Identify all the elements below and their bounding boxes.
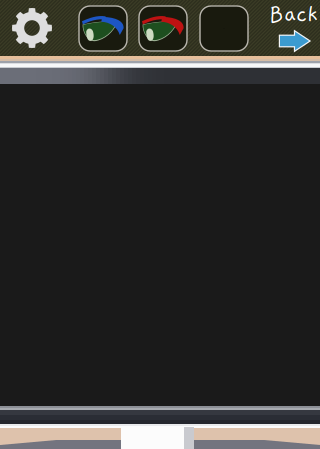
button[interactable]: Red-green 3D glasses bbox=[139, 6, 187, 51]
button[interactable]: Settings bbox=[6, 0, 58, 56]
button[interactable]: Blue-green 3D glasses bbox=[79, 6, 127, 51]
button[interactable]: No glasses bbox=[200, 6, 248, 51]
button[interactable]: Back bbox=[262, 0, 318, 52]
staticText: Back bbox=[269, 2, 318, 27]
